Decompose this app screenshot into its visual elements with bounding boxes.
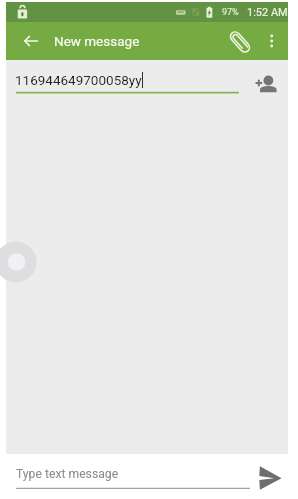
staticText: Type text message <box>16 467 119 481</box>
staticText: 1:52 AM <box>247 6 288 19</box>
button[interactable]: Send <box>253 459 287 493</box>
button[interactable]: Attach file <box>225 27 254 57</box>
button[interactable]: More options <box>259 27 284 57</box>
staticText: 97% <box>222 7 239 18</box>
button[interactable]: Back <box>18 28 44 54</box>
staticText: New message <box>54 33 140 49</box>
button[interactable]: Add contact <box>255 69 283 97</box>
staticText: 116944649700058yy <box>15 72 142 88</box>
